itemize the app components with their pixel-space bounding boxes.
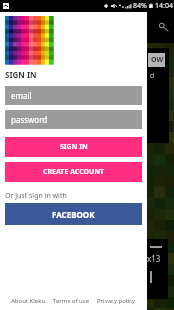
- staticText: FACEBOOK: [52, 209, 95, 220]
- staticText: 84%: [133, 1, 147, 11]
- button[interactable]: Privacy policy: [97, 297, 135, 305]
- staticText: email: [11, 90, 32, 101]
- button[interactable]: SIGN IN: [5, 137, 142, 157]
- button[interactable]: CREATE ACCOUNT: [5, 162, 142, 182]
- staticText: password: [11, 114, 48, 125]
- button[interactable]: password: [5, 110, 142, 129]
- staticText: 14:04: [155, 1, 173, 11]
- button[interactable]: FACEBOOK: [5, 203, 142, 225]
- staticText: x13: [147, 253, 161, 264]
- button[interactable]: email: [5, 86, 142, 105]
- staticText: d: [150, 71, 155, 81]
- staticText: OW: [151, 55, 164, 65]
- button[interactable]: Search: [155, 19, 169, 33]
- staticText: SIGN IN: [5, 69, 37, 80]
- button[interactable]: OW: [148, 53, 165, 67]
- staticText: CREATE ACCOUNT: [43, 167, 105, 177]
- staticText: Or just sign in with: [5, 191, 67, 201]
- button[interactable]: Terms of use: [53, 297, 90, 305]
- staticText: SIGN IN: [60, 142, 88, 152]
- button[interactable]: About Kleku: [11, 297, 46, 305]
